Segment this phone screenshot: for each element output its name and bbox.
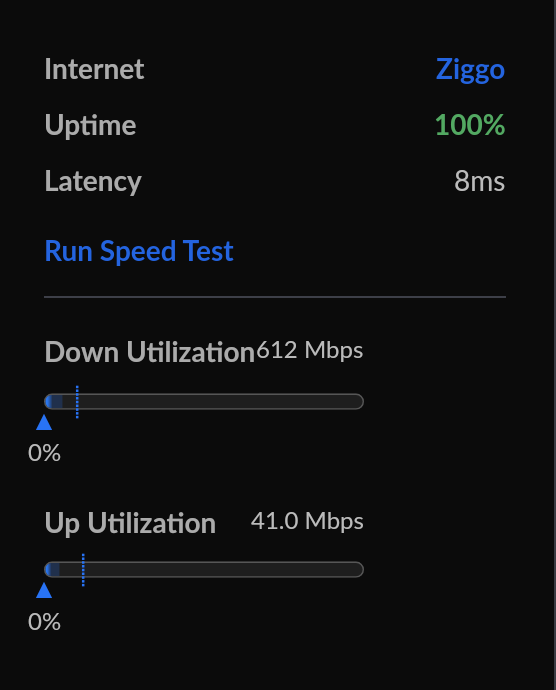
staticText: Uptime	[44, 107, 137, 141]
button[interactable]: Latency	[0, 152, 556, 208]
staticText: 0%	[28, 606, 62, 635]
staticText: 0%	[28, 437, 62, 466]
button[interactable]: Run Speed Test	[0, 222, 556, 278]
staticText: Up Utilization	[44, 505, 217, 539]
staticText: Internet	[44, 51, 145, 85]
button[interactable]: Internet	[0, 40, 556, 96]
staticText: Ziggo	[436, 51, 506, 85]
staticText: Run Speed Test	[44, 233, 234, 267]
staticText: 100%	[434, 107, 506, 141]
staticText: 41.0 Mbps	[251, 505, 364, 534]
staticText: 612 Mbps	[256, 334, 364, 363]
staticText: 8ms	[454, 163, 506, 197]
staticText: Down Utilization	[44, 334, 256, 368]
button[interactable]: Uptime	[0, 96, 556, 152]
staticText: Latency	[44, 163, 142, 197]
